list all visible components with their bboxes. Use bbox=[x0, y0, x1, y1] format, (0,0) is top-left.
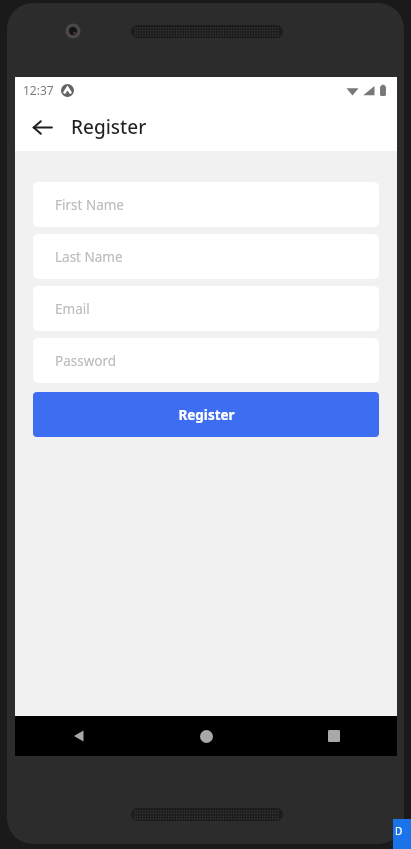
staticText: Password bbox=[55, 352, 117, 370]
button[interactable]: Back bbox=[15, 716, 143, 756]
button[interactable]: Password bbox=[33, 338, 379, 383]
staticText: D bbox=[395, 824, 403, 838]
staticText: 12:37 bbox=[23, 82, 54, 98]
button[interactable]: Recent apps bbox=[270, 716, 397, 756]
staticText: First Name bbox=[55, 196, 124, 214]
button[interactable]: First Name bbox=[33, 182, 379, 227]
staticText: Register bbox=[178, 406, 235, 424]
staticText: Register bbox=[71, 114, 147, 140]
button[interactable]: Last Name bbox=[33, 234, 379, 279]
button[interactable]: Register bbox=[33, 392, 379, 437]
staticText: Last Name bbox=[55, 248, 123, 266]
button[interactable]: Back bbox=[23, 108, 61, 146]
button[interactable]: Home bbox=[143, 716, 270, 756]
button[interactable]: Email bbox=[33, 286, 379, 331]
staticText: Email bbox=[55, 300, 90, 318]
